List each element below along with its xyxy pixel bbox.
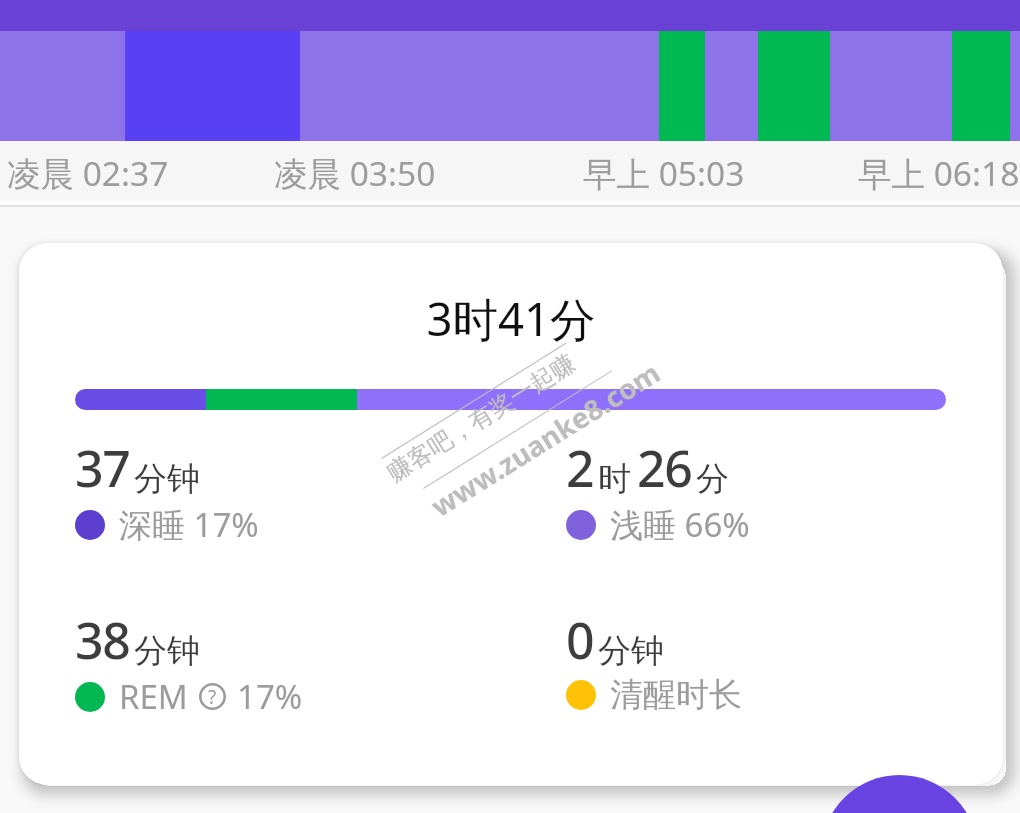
staticText: 清醒时长: [610, 674, 742, 716]
staticText: 分钟: [134, 458, 200, 500]
staticText: 17%: [237, 674, 303, 719]
staticText: 早上 05:03: [583, 150, 745, 196]
staticText: REM: [119, 674, 188, 719]
staticText: 浅睡 66%: [610, 502, 750, 547]
staticText: 深睡 17%: [119, 502, 259, 547]
staticText: ?: [208, 684, 217, 710]
button[interactable]: Add sleep record: [821, 775, 978, 813]
staticText: 早上 06:18: [858, 150, 1020, 196]
staticText: 0: [566, 606, 594, 674]
button[interactable]: 2: [566, 434, 750, 547]
staticText: www.zuanke8.com: [424, 353, 667, 525]
staticText: 分钟: [598, 630, 664, 672]
button[interactable]: 38: [75, 606, 303, 719]
staticText: 26: [637, 434, 692, 502]
staticText: 分钟: [134, 630, 200, 672]
staticText: 37: [75, 434, 130, 502]
staticText: 分: [696, 458, 729, 500]
staticText: 凌晨 02:37: [7, 150, 169, 196]
staticText: 3时41分: [19, 287, 1003, 349]
button[interactable]: 37: [75, 434, 259, 547]
staticText: 凌晨 03:50: [274, 150, 436, 196]
staticText: 赚客吧，有奖一起赚: [382, 348, 581, 488]
staticText: 时: [598, 458, 631, 500]
button[interactable]: 0: [566, 606, 742, 716]
staticText: 2: [566, 434, 594, 502]
staticText: 38: [75, 606, 130, 674]
button[interactable]: Sleep stage timeline: [0, 31, 1020, 141]
